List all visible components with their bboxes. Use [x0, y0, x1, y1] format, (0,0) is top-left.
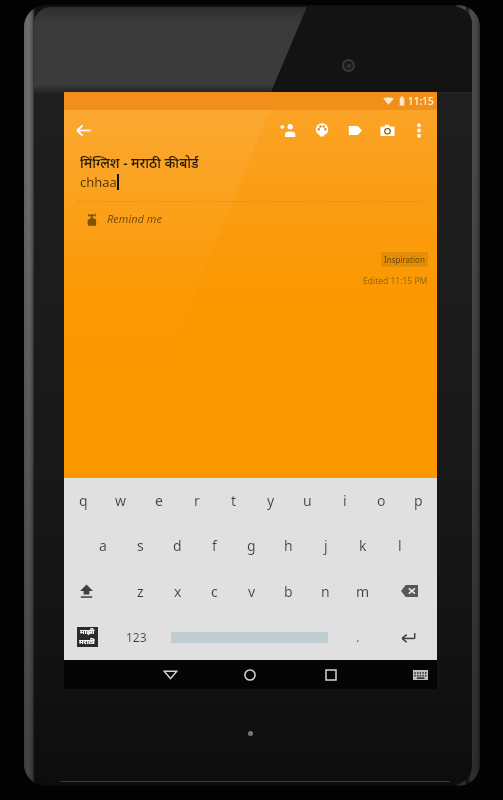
button[interactable]: More options — [404, 111, 433, 149]
button[interactable]: d — [159, 523, 196, 568]
staticText: t — [231, 491, 237, 510]
staticText: r — [194, 491, 200, 510]
button[interactable]: w — [102, 478, 140, 523]
button[interactable]: 123 — [111, 614, 161, 660]
staticText: f — [212, 536, 217, 555]
button[interactable]: Camera — [371, 111, 404, 149]
button[interactable]: z — [121, 568, 159, 614]
button[interactable]: Change keyboard — [406, 661, 434, 689]
staticText: a — [99, 536, 107, 555]
staticText: माझी — [80, 627, 95, 637]
staticText: b — [284, 582, 293, 601]
button[interactable]: j — [307, 523, 344, 568]
button[interactable]: Home — [235, 660, 265, 689]
button[interactable]: Delete — [381, 568, 437, 614]
button[interactable]: p — [400, 478, 437, 523]
button[interactable]: e — [140, 478, 178, 523]
staticText: w — [115, 491, 127, 510]
staticText: . — [356, 628, 360, 646]
staticText: q — [79, 491, 88, 510]
staticText: h — [284, 536, 293, 555]
button[interactable]: a — [84, 523, 122, 568]
button[interactable]: u — [289, 478, 326, 523]
button[interactable]: Colour — [305, 111, 338, 149]
button[interactable]: Shift — [64, 568, 121, 614]
button[interactable]: Remind me — [64, 209, 437, 228]
staticText: u — [303, 491, 312, 510]
button[interactable]: y — [252, 478, 289, 523]
button[interactable]: . — [337, 614, 379, 660]
button[interactable]: f — [196, 523, 233, 568]
staticText: y — [267, 491, 275, 510]
button[interactable]: Label — [338, 111, 371, 149]
button[interactable]: g — [233, 523, 270, 568]
staticText: k — [359, 536, 367, 555]
button[interactable]: o — [363, 478, 400, 523]
button[interactable]: Recent apps — [316, 660, 346, 689]
staticText: p — [414, 491, 423, 510]
staticText: l — [398, 536, 402, 555]
button[interactable]: Back — [155, 660, 185, 689]
staticText: Inspiration — [384, 254, 425, 265]
button[interactable]: m — [344, 568, 381, 614]
staticText: e — [155, 491, 163, 510]
button[interactable]: v — [233, 568, 270, 614]
staticText: मराठी — [79, 637, 96, 647]
button[interactable]: l — [381, 523, 418, 568]
staticText: z — [137, 582, 144, 601]
staticText: मिंग्लिश - मराठी कीबोर्ड — [80, 154, 199, 172]
staticText: Edited 11:15 PM — [363, 275, 428, 287]
button[interactable]: n — [307, 568, 344, 614]
staticText: m — [356, 582, 370, 601]
button[interactable]: Inspiration — [381, 252, 428, 267]
staticText: s — [137, 536, 144, 555]
staticText: c — [211, 582, 218, 601]
staticText: Remind me — [107, 211, 162, 226]
button[interactable]: r — [178, 478, 215, 523]
staticText: g — [247, 536, 256, 555]
staticText: o — [377, 491, 386, 510]
staticText: x — [174, 582, 182, 601]
staticText: n — [321, 582, 330, 601]
button[interactable]: Collaborator — [272, 111, 305, 149]
button[interactable]: b — [270, 568, 307, 614]
staticText: i — [343, 491, 347, 510]
button[interactable]: Enter — [379, 614, 437, 660]
staticText: 11:15 — [408, 94, 434, 108]
button[interactable]: h — [270, 523, 307, 568]
button[interactable]: s — [122, 523, 159, 568]
staticText: d — [173, 536, 182, 555]
button[interactable]: t — [215, 478, 252, 523]
button[interactable]: c — [196, 568, 233, 614]
staticText: v — [248, 582, 256, 601]
button[interactable]: Space — [161, 614, 337, 660]
button[interactable]: k — [344, 523, 381, 568]
staticText: 123 — [126, 629, 147, 645]
button[interactable]: q — [64, 478, 102, 523]
button[interactable]: Navigate up — [64, 111, 102, 149]
button[interactable]: i — [326, 478, 363, 523]
button[interactable]: Switch language — [64, 614, 111, 660]
button[interactable]: x — [159, 568, 196, 614]
staticText: j — [324, 536, 328, 555]
staticText: chhaa — [80, 173, 117, 191]
